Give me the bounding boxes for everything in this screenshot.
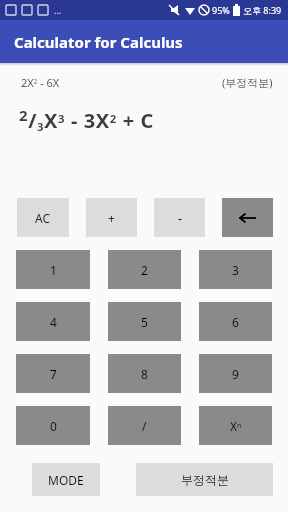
staticText: +: [108, 210, 115, 226]
button[interactable]: 9: [199, 354, 272, 393]
staticText: (부정적분): [222, 75, 273, 90]
button[interactable]: 5: [108, 302, 181, 341]
staticText: 6: [232, 314, 239, 330]
staticText: MODE: [48, 472, 84, 488]
staticText: /: [142, 418, 147, 434]
staticText: 2/3X3 - 3X2 + C: [19, 105, 154, 134]
button[interactable]: /: [108, 406, 181, 445]
button[interactable]: 6: [199, 302, 272, 341]
staticText: 9: [232, 366, 239, 382]
button[interactable]: -: [154, 198, 205, 237]
staticText: ...: [54, 4, 62, 16]
staticText: Calculator for Calculus: [14, 32, 183, 52]
button[interactable]: 7: [16, 354, 90, 393]
button[interactable]: 1: [16, 250, 90, 289]
staticText: 3: [232, 262, 239, 278]
button[interactable]: Xn: [199, 406, 272, 445]
button[interactable]: 8: [108, 354, 181, 393]
staticText: 부정적분: [181, 472, 229, 487]
button[interactable]: [222, 198, 273, 237]
button[interactable]: 4: [16, 302, 90, 341]
button[interactable]: 0: [16, 406, 90, 445]
staticText: 2X2 - 6X: [21, 75, 60, 90]
staticText: 오후 8:39: [243, 4, 282, 16]
staticText: 4: [50, 314, 57, 330]
button[interactable]: 3: [199, 250, 272, 289]
staticText: 8: [141, 366, 148, 382]
button[interactable]: 부정적분: [136, 463, 273, 496]
staticText: 7: [50, 366, 57, 382]
staticText: 95%: [212, 4, 230, 16]
staticText: -: [178, 210, 182, 226]
staticText: 0: [50, 418, 57, 434]
staticText: AC: [35, 210, 51, 226]
staticText: 5: [141, 314, 148, 330]
staticText: 2: [141, 262, 148, 278]
staticText: 1: [50, 262, 57, 278]
button[interactable]: 2: [108, 250, 181, 289]
button[interactable]: +: [86, 198, 137, 237]
staticText: Xn: [230, 418, 242, 434]
button[interactable]: MODE: [32, 463, 100, 496]
button[interactable]: AC: [17, 198, 69, 237]
